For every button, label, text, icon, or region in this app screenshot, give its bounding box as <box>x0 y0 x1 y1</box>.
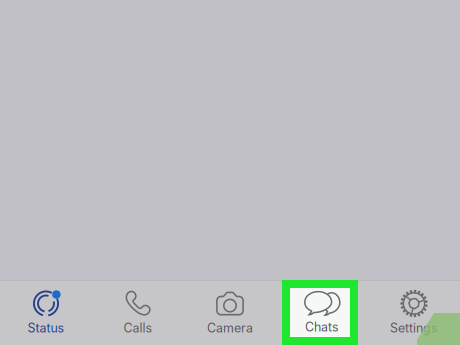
staticText: Chats <box>305 319 339 334</box>
button[interactable]: Status <box>0 281 92 345</box>
staticText: Calls <box>123 320 152 335</box>
button[interactable]: Settings <box>368 281 460 345</box>
staticText: Camera <box>207 320 253 335</box>
button[interactable]: Camera <box>184 281 276 345</box>
staticText: Status <box>27 320 64 335</box>
staticText: Settings <box>390 320 438 335</box>
staticText: Chats <box>305 320 339 335</box>
button[interactable]: Chats <box>276 281 368 345</box>
button[interactable]: Calls <box>92 281 184 345</box>
button[interactable]: Chats <box>282 280 358 345</box>
